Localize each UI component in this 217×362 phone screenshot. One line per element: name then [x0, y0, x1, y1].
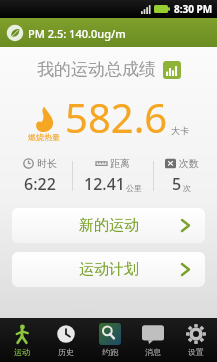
button[interactable]: 历史 [44, 318, 88, 362]
button[interactable]: 运动 [0, 318, 44, 362]
staticText: 约跑 [102, 347, 118, 357]
staticText: PM 2.5: 140.0ug/m [28, 26, 126, 41]
staticText: 6:22 [24, 173, 56, 195]
staticText: 我的运动总成绩 [37, 59, 156, 80]
staticText: 设置 [188, 347, 204, 357]
staticText: 历史 [58, 347, 74, 357]
staticText: 次数 [179, 157, 199, 170]
staticText: 运动 [14, 347, 30, 357]
button[interactable]: PM 2.5 air quality [0, 18, 217, 47]
staticText: 燃烧热量 [28, 132, 60, 142]
staticText: 582.6 [65, 90, 168, 142]
staticText: 次 [183, 183, 191, 193]
button[interactable]: 约跑 [88, 318, 131, 362]
staticText: 5 [172, 173, 182, 195]
staticText: 8:30 PM [174, 2, 213, 16]
staticText: 公里 [126, 183, 142, 193]
staticText: 距离 [110, 157, 130, 170]
staticText: 消息 [145, 347, 161, 357]
button[interactable]: 设置 [174, 318, 217, 362]
staticText: 12.41 [84, 173, 125, 195]
button[interactable]: 次数 [154, 157, 209, 195]
staticText: 大卡 [171, 125, 189, 136]
staticText: 新的运动 [79, 216, 139, 235]
button[interactable]: 消息 [131, 318, 174, 362]
staticText: 运动计划 [79, 260, 139, 279]
button[interactable]: 时长 [8, 157, 72, 195]
staticText: 时长 [37, 157, 57, 170]
button[interactable]: 新的运动 [12, 208, 205, 243]
button[interactable]: 运动计划 [12, 252, 205, 287]
button[interactable]: 距离 [73, 157, 153, 195]
button[interactable]: Statistics chart [163, 61, 181, 79]
